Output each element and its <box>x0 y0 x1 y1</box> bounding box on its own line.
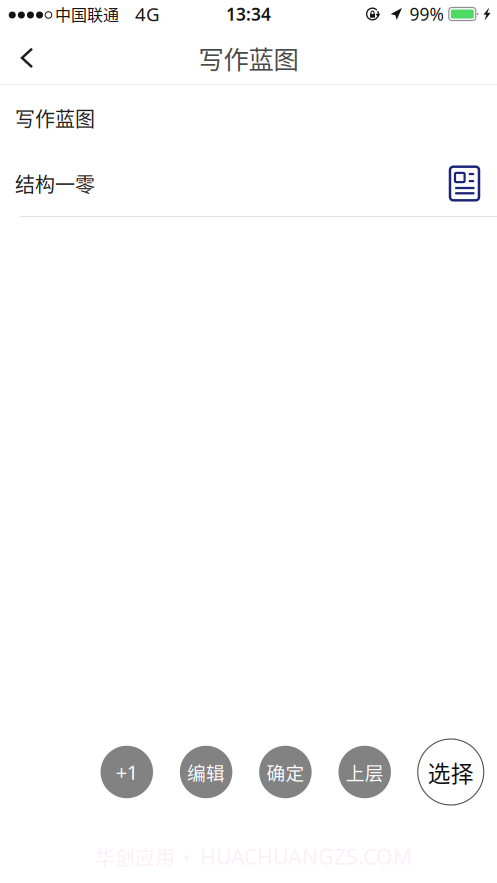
staticText: 编辑 <box>187 758 225 785</box>
staticText: 4G <box>135 2 160 26</box>
staticText: 写作蓝图 <box>15 103 95 132</box>
button[interactable]: 选择 <box>418 739 484 805</box>
staticText: 华创应用 <box>95 842 175 871</box>
staticText: HUACHUANGZS.COM <box>200 842 412 871</box>
button[interactable]: 确定 <box>259 746 312 798</box>
button[interactable]: Back <box>5 32 49 84</box>
button[interactable]: +1 <box>101 746 153 798</box>
staticText: 写作蓝图 <box>198 40 298 76</box>
staticText: 确定 <box>266 758 304 785</box>
button[interactable]: 结构一零 <box>0 151 497 217</box>
button[interactable]: 编辑 <box>180 746 232 798</box>
staticText: 13:34 <box>226 2 271 25</box>
staticText: 中国联通 <box>55 2 119 26</box>
staticText: 选择 <box>428 756 474 788</box>
staticText: 上层 <box>346 758 384 785</box>
button[interactable]: 上层 <box>338 746 391 798</box>
staticText: 99% <box>409 2 443 25</box>
staticText: 结构一零 <box>15 169 95 198</box>
staticText: +1 <box>116 759 138 785</box>
staticText: • <box>183 844 190 869</box>
